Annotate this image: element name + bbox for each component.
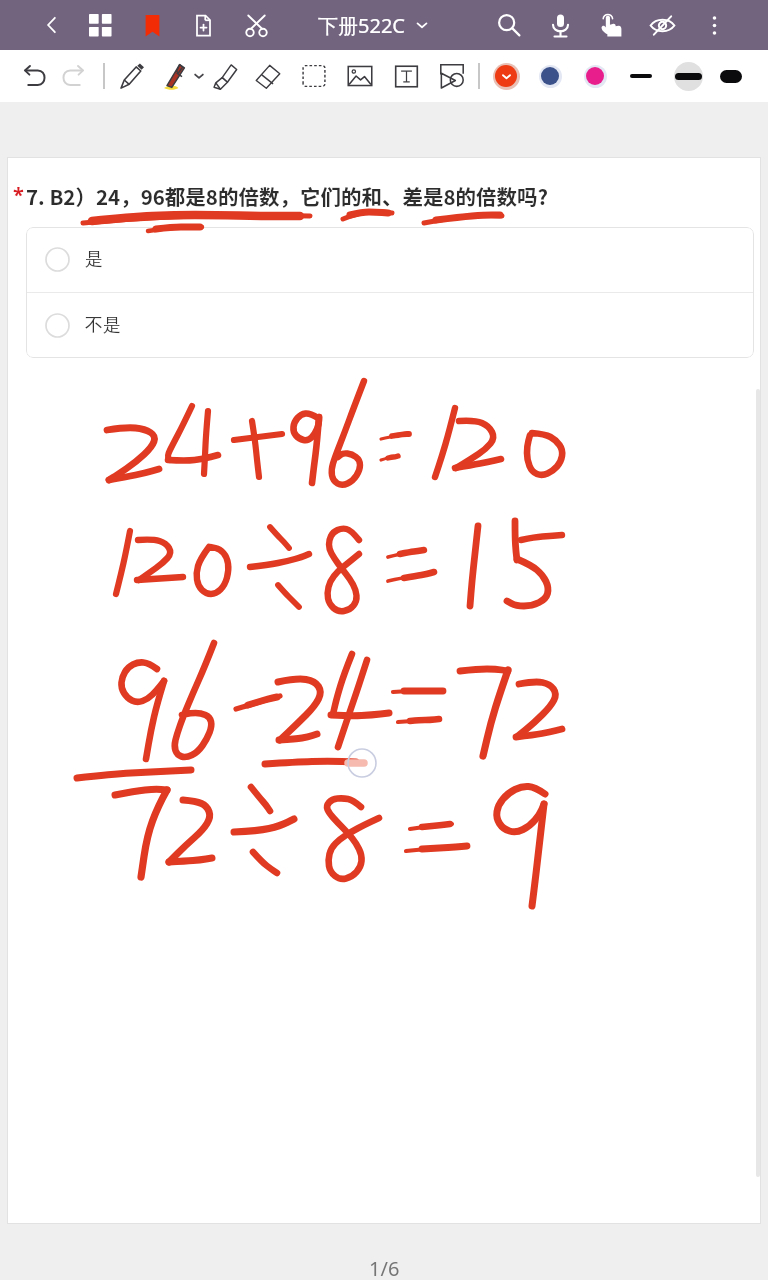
staticText: * [13, 181, 24, 208]
button[interactable]: Ink colour [487, 50, 525, 102]
button[interactable]: Voice input [542, 0, 578, 50]
button[interactable]: Touch mode [593, 0, 629, 50]
button[interactable]: 不是 [26, 293, 754, 358]
button[interactable]: Ink colour [531, 50, 569, 102]
button[interactable]: Stroke width [622, 50, 660, 102]
staticText: 7. B2）24，96都是8的倍数，它们的和、差是8的倍数吗? [26, 181, 549, 211]
button[interactable]: Lasso select [295, 50, 333, 102]
button[interactable]: Stroke width [669, 50, 707, 102]
button[interactable]: More options [696, 0, 732, 50]
button[interactable]: Thick stroke [712, 50, 750, 102]
button[interactable]: Cut [238, 0, 274, 50]
button[interactable]: Undo [16, 50, 54, 102]
button[interactable]: Back [34, 0, 70, 50]
button[interactable]: Ballpoint pen [112, 50, 150, 102]
button[interactable]: Highlighter [205, 50, 243, 102]
staticText: 不是 [85, 314, 121, 337]
button[interactable]: 下册522C [318, 0, 429, 50]
button[interactable]: Marker pen [157, 50, 195, 102]
button[interactable]: Bookmark [134, 0, 170, 50]
button[interactable]: 是 [26, 227, 754, 292]
staticText: 是 [85, 248, 103, 271]
button[interactable]: Redo [54, 50, 92, 102]
button[interactable]: Insert image [341, 50, 379, 102]
staticText: 1/6 [369, 1255, 400, 1280]
button[interactable]: Insert text [387, 50, 425, 102]
button[interactable]: Ink colour [576, 50, 614, 102]
button[interactable]: Pages [82, 0, 118, 50]
button[interactable]: Hide annotations [644, 0, 680, 50]
button[interactable]: Add page [185, 0, 221, 50]
button[interactable]: Insert shape [433, 50, 471, 102]
staticText: 下册522C [318, 12, 405, 39]
button[interactable]: Eraser [249, 50, 287, 102]
button[interactable]: Search [491, 0, 527, 50]
